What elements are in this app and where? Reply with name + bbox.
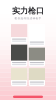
staticText: 实力枪口 <box>12 6 44 16</box>
button[interactable] <box>11 68 27 86</box>
button[interactable] <box>11 24 27 43</box>
button[interactable] <box>11 45 27 67</box>
button[interactable] <box>29 48 45 67</box>
button[interactable] <box>29 68 45 86</box>
staticText: 教你如何练成神枪手 <box>14 17 41 20</box>
button[interactable] <box>29 24 45 46</box>
button[interactable] <box>0 96 56 98</box>
